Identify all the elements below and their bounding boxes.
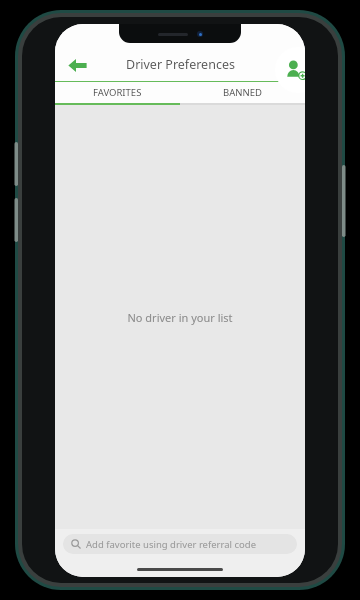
button[interactable]: FAVORITES bbox=[55, 82, 180, 103]
button[interactable]: BANNED bbox=[180, 82, 305, 103]
staticText: FAVORITES bbox=[93, 86, 142, 99]
button[interactable]: Add favorite using driver referral code bbox=[63, 534, 297, 554]
staticText: Add favorite using driver referral code bbox=[86, 538, 257, 551]
staticText: BANNED bbox=[223, 86, 262, 99]
button[interactable]: Add driver bbox=[275, 47, 305, 93]
staticText: Driver Preferences bbox=[126, 56, 235, 73]
staticText: No driver in your list bbox=[127, 310, 233, 325]
button[interactable]: Back bbox=[61, 49, 93, 81]
